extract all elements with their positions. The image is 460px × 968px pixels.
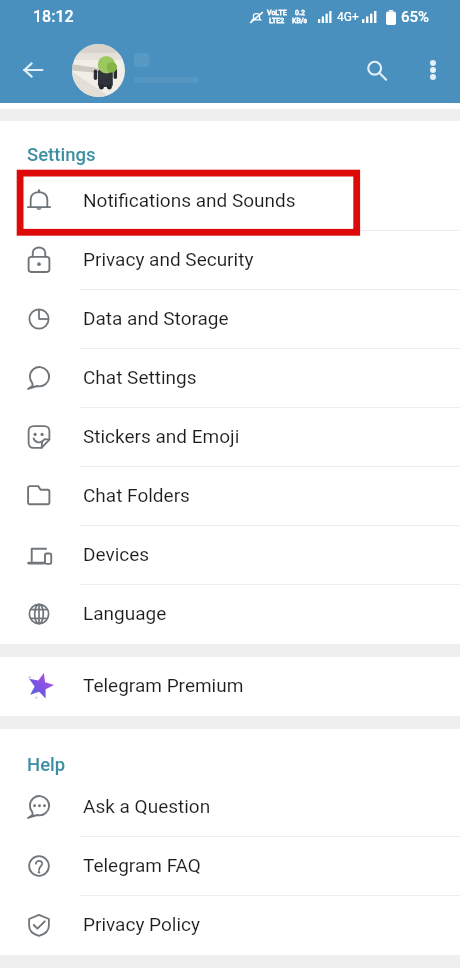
staticText: Stickers and Emoji <box>83 425 240 447</box>
button[interactable]: Privacy and Security <box>0 231 460 290</box>
staticText: KB/s <box>292 17 308 25</box>
staticText: Language <box>83 602 167 624</box>
button[interactable]: More options <box>411 48 455 92</box>
button[interactable]: Telegram Premium <box>0 657 460 716</box>
staticText: Help <box>27 754 66 776</box>
button[interactable]: Privacy Policy <box>0 896 460 955</box>
button[interactable]: Ask a Question <box>0 778 460 837</box>
staticText: Privacy Policy <box>83 913 200 935</box>
staticText: Privacy and Security <box>83 248 254 270</box>
staticText: Notifications and Sounds <box>83 189 296 211</box>
button[interactable]: Back <box>11 48 55 92</box>
button[interactable]: Notifications and Sounds <box>0 172 460 231</box>
staticText: 0.2 <box>295 9 305 17</box>
staticText: Data and Storage <box>83 307 229 329</box>
staticText: Devices <box>83 543 150 565</box>
staticText: 4G+ <box>337 10 359 24</box>
staticText: Chat Settings <box>83 366 197 388</box>
button[interactable]: Chat Folders <box>0 467 460 526</box>
staticText: Chat Folders <box>83 484 190 506</box>
staticText: 18:12 <box>33 7 74 26</box>
button[interactable]: Chat Settings <box>0 349 460 408</box>
button[interactable]: Data and Storage <box>0 290 460 349</box>
staticText: LTE2 <box>269 17 285 25</box>
button[interactable]: Profile photo <box>72 44 125 97</box>
staticText: VoLTE <box>267 9 287 17</box>
staticText: Telegram Premium <box>83 674 244 696</box>
button[interactable]: Stickers and Emoji <box>0 408 460 467</box>
button[interactable]: Devices <box>0 526 460 585</box>
button[interactable]: Telegram FAQ <box>0 837 460 896</box>
staticText: Telegram FAQ <box>83 854 201 876</box>
button[interactable]: Language <box>0 585 460 644</box>
staticText: Ask a Question <box>83 795 211 817</box>
staticText: Settings <box>27 144 96 166</box>
button[interactable]: Search <box>354 48 398 92</box>
staticText: 65% <box>401 8 430 26</box>
